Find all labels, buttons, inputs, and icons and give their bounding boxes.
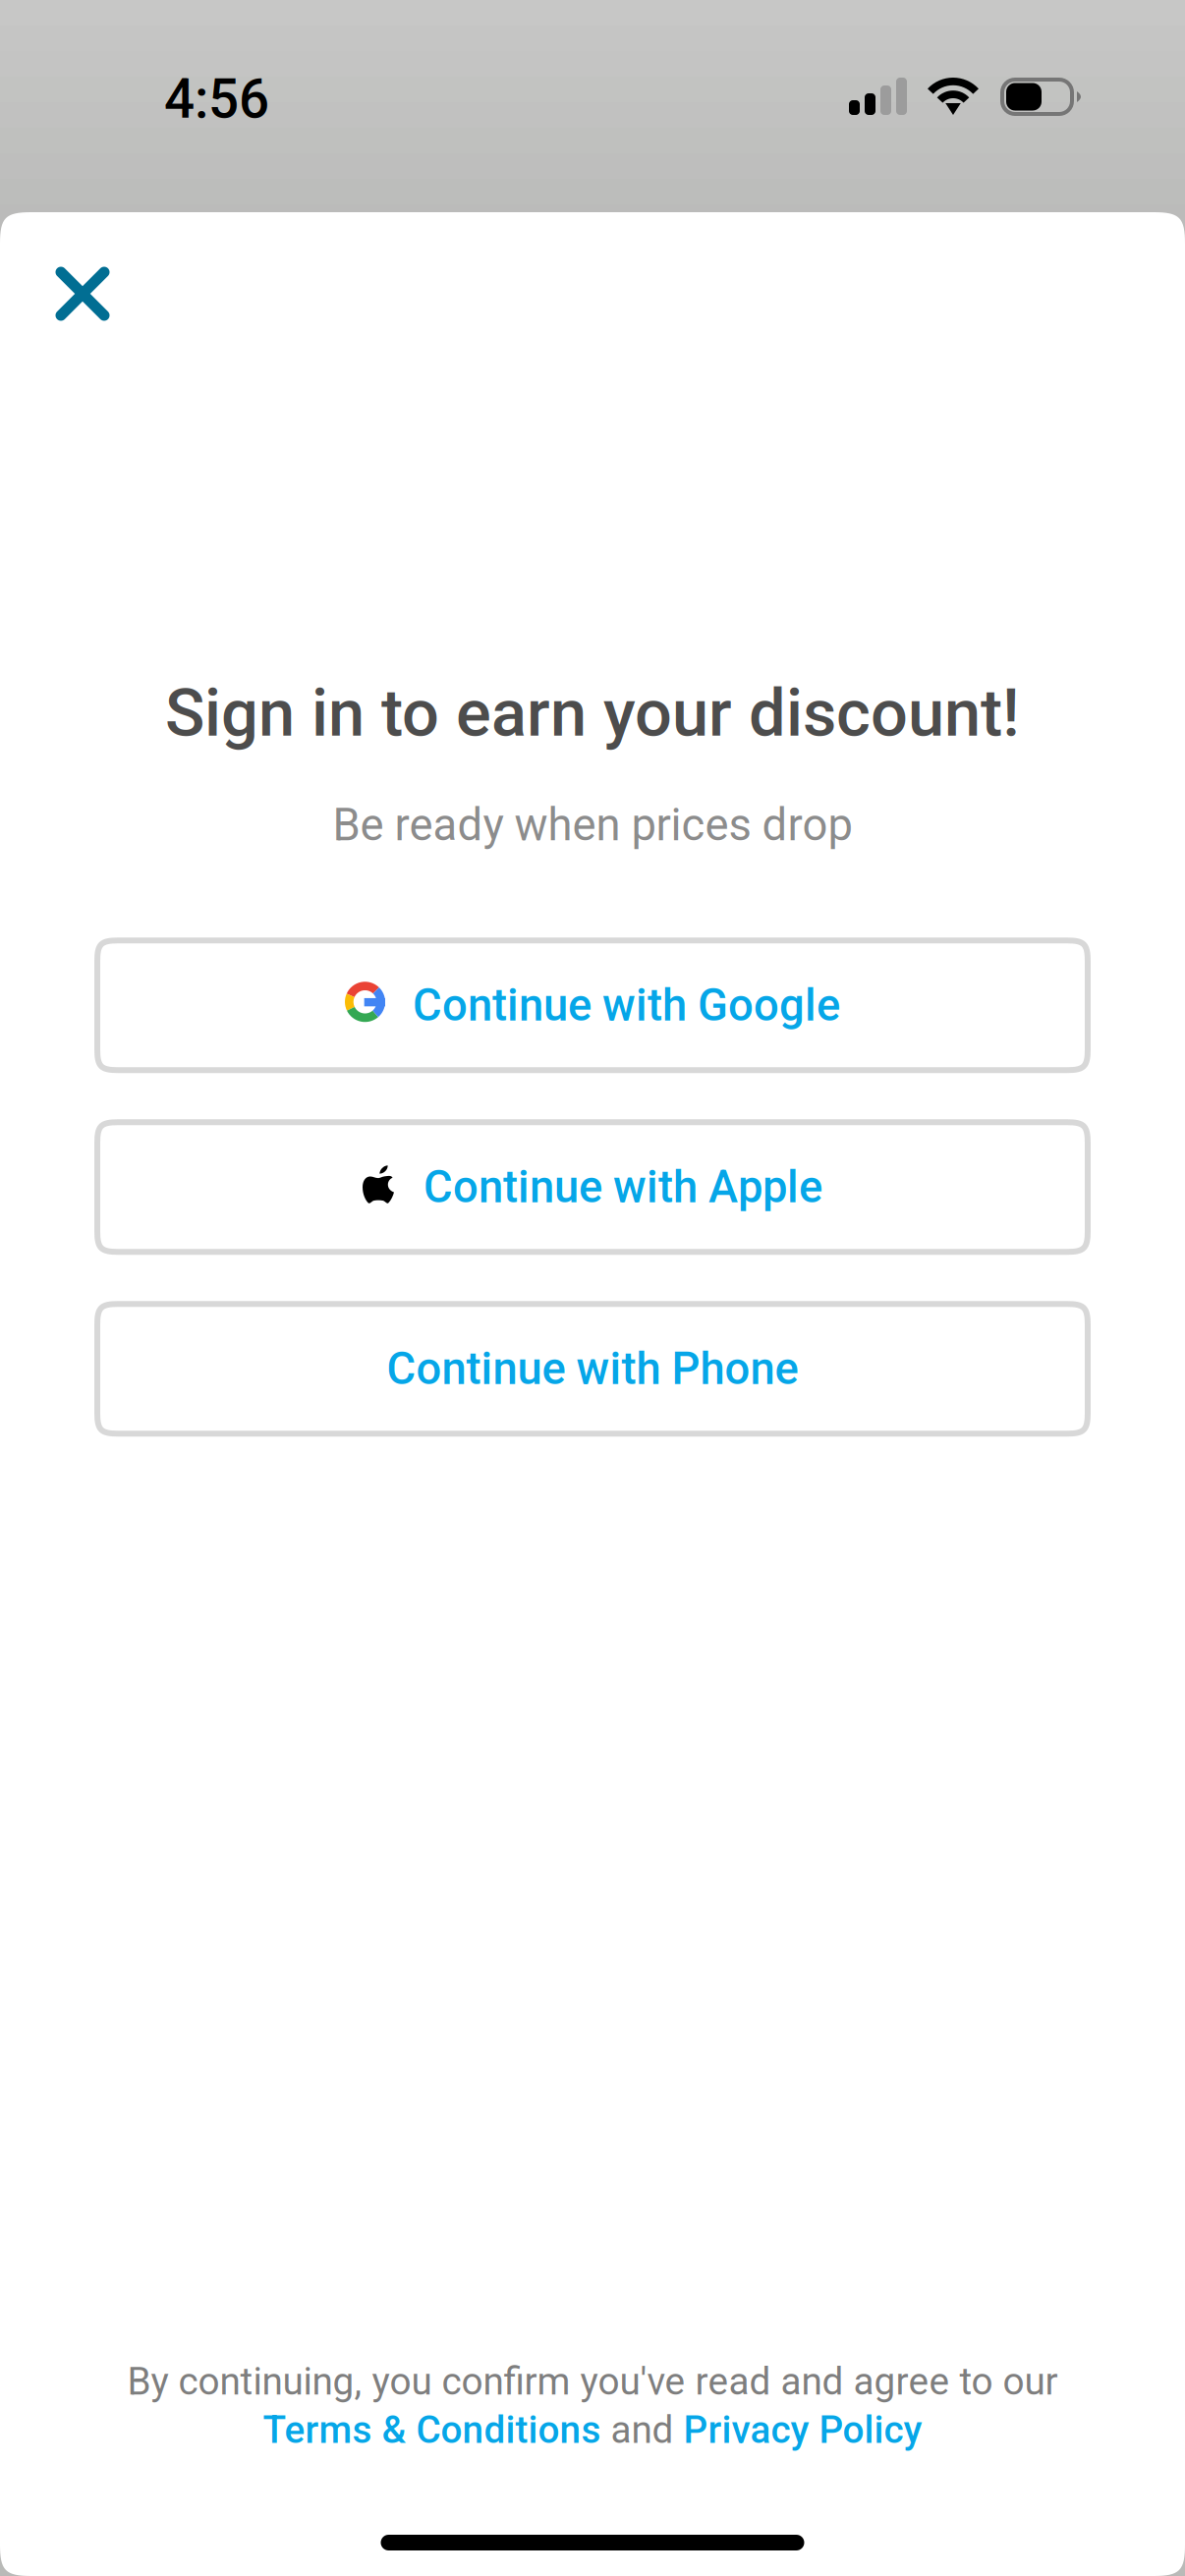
staticText: 4:56 [164,68,269,131]
staticText: and [601,2408,683,2452]
staticText: Terms & Conditions [263,2408,601,2452]
staticText: Be ready when prices drop [333,799,852,851]
staticText: Sign in to earn your discount! [165,675,1020,752]
button[interactable]: Privacy Policy [683,2408,922,2452]
staticText: Continue with Phone [387,1343,798,1395]
staticText: By continuing, you confirm you've read a… [127,2359,1058,2404]
button[interactable]: Continue with Apple [94,1119,1091,1255]
button[interactable]: Close [0,212,143,330]
staticText: Continue with Google [413,979,840,1031]
button[interactable]: Continue with Phone [94,1301,1091,1437]
button[interactable]: Terms & Conditions [263,2408,601,2452]
staticText: Continue with Apple [423,1161,822,1213]
button[interactable]: Continue with Google [94,937,1091,1073]
staticText: Privacy Policy [683,2408,922,2452]
